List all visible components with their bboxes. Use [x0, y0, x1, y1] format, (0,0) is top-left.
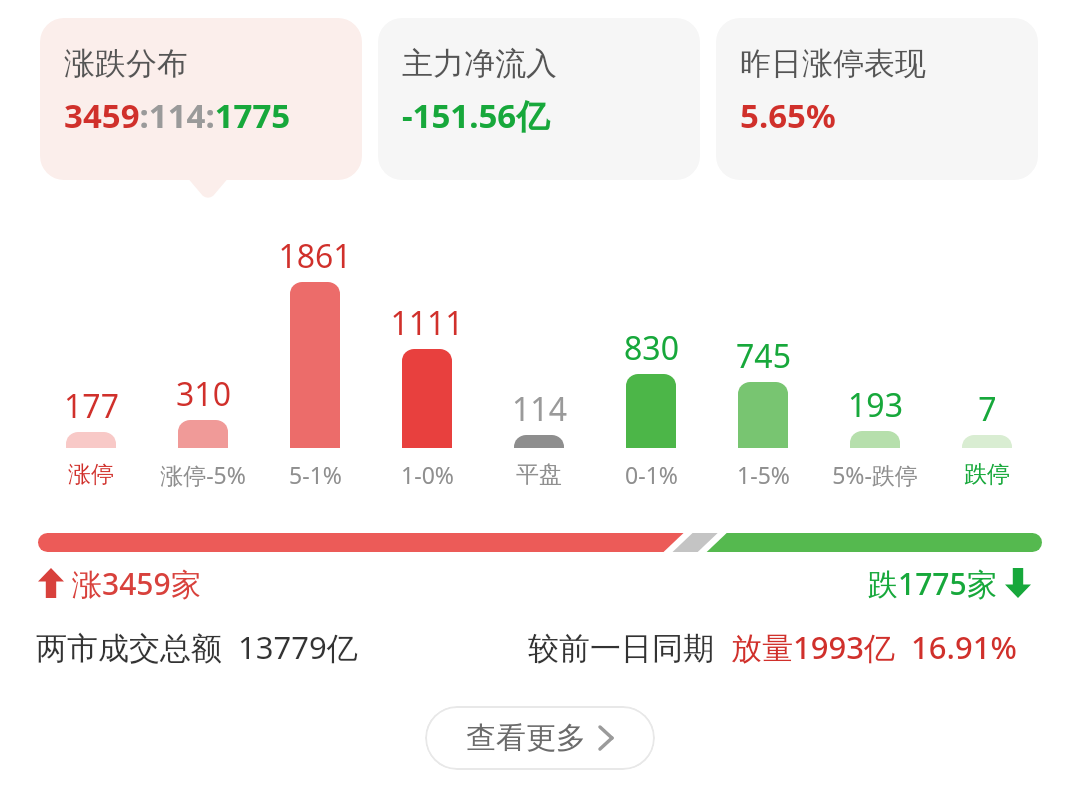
staticText: 查看更多	[466, 719, 586, 757]
staticText: 114	[512, 387, 567, 431]
staticText: 5%-跌停	[832, 459, 918, 490]
staticText: 0-1%	[625, 459, 678, 490]
other: 下跌	[1005, 568, 1031, 598]
button[interactable]: 查看更多	[425, 706, 655, 770]
other: 上涨	[38, 568, 64, 598]
staticText: 放量1993亿 16.91%	[731, 626, 1017, 668]
staticText: 7	[978, 387, 997, 431]
staticText: 745	[736, 334, 791, 378]
staticText: 193	[848, 383, 903, 427]
staticText: 1-0%	[401, 459, 454, 490]
staticText: 涨停-5%	[160, 459, 246, 490]
staticText: 5.65%	[740, 93, 836, 138]
staticText: 较前一日同期	[528, 626, 731, 668]
staticText: 5-1%	[289, 459, 342, 490]
staticText: 177	[64, 384, 119, 428]
staticText: 昨日涨停表现	[740, 44, 926, 83]
staticText: 1111	[390, 301, 464, 345]
staticText: 平盘	[516, 460, 562, 489]
button[interactable]: 主力净流入	[378, 18, 700, 180]
button[interactable]: 涨跌分布	[40, 18, 362, 180]
staticText: 主力净流入	[402, 44, 557, 83]
staticText: 830	[624, 326, 679, 370]
staticText: 涨3459家	[72, 563, 201, 604]
staticText: 涨跌分布	[64, 44, 188, 83]
staticText: 跌停	[964, 460, 1010, 489]
staticText: 跌1775家	[868, 563, 997, 604]
staticText: 1861	[278, 234, 352, 278]
staticText: 涨停	[68, 460, 114, 489]
staticText: 1-5%	[737, 459, 790, 490]
button[interactable]: 昨日涨停表现	[716, 18, 1038, 180]
staticText: 两市成交总额 13779亿	[36, 626, 358, 668]
staticText: 310	[176, 372, 231, 416]
staticText: -151.56亿	[402, 93, 550, 138]
staticText: 3459:114:1775	[64, 93, 291, 138]
